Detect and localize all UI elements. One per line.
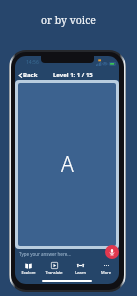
staticText: A: [61, 150, 74, 179]
button[interactable]: Record answer by voice: [105, 245, 119, 259]
button[interactable]: Back: [18, 71, 38, 79]
staticText: Level 1: 1 / 15: [53, 71, 93, 79]
button[interactable]: Translate: [41, 259, 67, 277]
button[interactable]: Explore: [15, 259, 41, 277]
button[interactable]: Learn: [67, 259, 93, 277]
staticText: 14:56: [26, 59, 39, 66]
staticText: Back: [23, 71, 38, 79]
staticText: Translate: [45, 270, 63, 274]
staticText: Learn: [75, 270, 86, 274]
staticText: Explore: [21, 270, 36, 274]
staticText: Type your answer here...: [19, 251, 71, 257]
button[interactable]: More: [93, 259, 119, 277]
staticText: More: [101, 270, 111, 274]
button[interactable]: Type your answer here...: [16, 250, 101, 258]
staticText: or by voice: [41, 13, 96, 27]
